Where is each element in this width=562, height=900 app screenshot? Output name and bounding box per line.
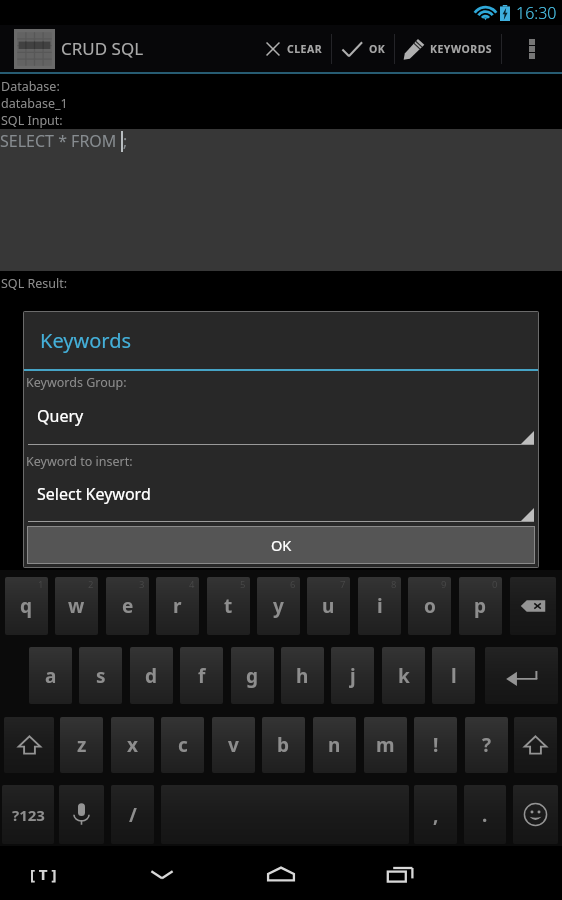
button[interactable]: ?123 — [2, 785, 54, 844]
button[interactable]: f — [180, 647, 223, 704]
staticText: 9 — [441, 578, 447, 591]
staticText: Select Keyword — [37, 483, 151, 505]
button[interactable]: x — [111, 717, 154, 773]
button[interactable]: h — [281, 647, 324, 704]
staticText: OK — [369, 42, 386, 56]
staticText: l — [451, 663, 457, 689]
staticText: a — [45, 663, 57, 689]
staticText: m — [376, 732, 395, 758]
button[interactable]: j — [331, 647, 374, 704]
staticText: p — [474, 593, 487, 619]
staticText: [ T ] — [30, 864, 57, 884]
staticText: Keywords Group: — [26, 374, 127, 391]
button[interactable]: ! — [414, 717, 457, 773]
staticText: Keyword to insert: — [26, 453, 133, 470]
button[interactable]: Backspace — [510, 577, 556, 635]
staticText: . — [482, 802, 488, 828]
staticText: 6 — [290, 578, 296, 591]
button[interactable]: y — [257, 577, 300, 635]
staticText: CLEAR — [287, 42, 323, 56]
button[interactable]: l — [432, 647, 475, 704]
button[interactable]: Recent apps — [371, 847, 431, 900]
staticText: s — [96, 663, 106, 689]
staticText: SELECT * FROM — [0, 130, 121, 152]
staticText: e — [122, 593, 134, 619]
button[interactable]: c — [161, 717, 204, 773]
button[interactable]: Select Keyword — [28, 469, 534, 522]
staticText: 0 — [492, 578, 498, 591]
button[interactable]: More options — [502, 25, 562, 72]
button[interactable]: OK — [332, 25, 394, 72]
staticText: SQL Result: — [1, 275, 68, 292]
button[interactable]: t — [207, 577, 250, 635]
staticText: ; — [123, 130, 128, 152]
staticText: 1 — [38, 578, 44, 591]
staticText: w — [68, 593, 85, 619]
staticText: 2 — [88, 578, 94, 591]
button[interactable]: , — [414, 785, 457, 844]
staticText: SQL Input: — [1, 112, 63, 129]
staticText: x — [127, 732, 138, 758]
button[interactable]: Query — [28, 390, 534, 445]
staticText: ! — [433, 732, 439, 758]
staticText: q — [20, 593, 33, 619]
staticText: y — [273, 593, 284, 619]
button[interactable]: / — [111, 785, 154, 844]
button[interactable]: Shift — [4, 717, 54, 773]
staticText: 7 — [340, 578, 346, 591]
staticText: f — [198, 663, 206, 689]
button[interactable]: OK — [28, 527, 534, 563]
staticText: v — [228, 732, 239, 758]
button[interactable]: m — [364, 717, 407, 773]
staticText: k — [398, 663, 410, 689]
button[interactable]: d — [130, 647, 173, 704]
button[interactable]: r — [156, 577, 199, 635]
staticText: 5 — [240, 578, 246, 591]
staticText: ?123 — [12, 805, 45, 825]
staticText: CRUD SQL — [61, 37, 144, 60]
staticText: / — [129, 802, 137, 828]
button[interactable]: p — [459, 577, 502, 635]
button[interactable]: q — [5, 577, 48, 635]
staticText: OK — [271, 535, 292, 555]
button[interactable]: CLEAR — [256, 25, 331, 72]
button[interactable]: e — [106, 577, 149, 635]
button[interactable]: Emoji — [513, 785, 558, 844]
staticText: j — [350, 663, 356, 689]
staticText: n — [328, 732, 341, 758]
staticText: g — [246, 663, 259, 689]
button[interactable]: w — [55, 577, 98, 635]
staticText: 4 — [189, 578, 195, 591]
staticText: KEYWORDS — [430, 42, 493, 56]
button[interactable]: g — [231, 647, 274, 704]
button[interactable]: a — [29, 647, 72, 704]
button[interactable]: KEYWORDS — [395, 25, 501, 72]
button[interactable]: . — [464, 785, 506, 844]
button[interactable]: k — [382, 647, 425, 704]
button[interactable]: n — [313, 717, 356, 773]
button[interactable]: Home — [251, 847, 311, 900]
button[interactable]: Choose input method — [8, 847, 78, 900]
button[interactable]: z — [60, 717, 103, 773]
button[interactable]: v — [212, 717, 255, 773]
staticText: Database: — [1, 78, 60, 95]
staticText: d — [145, 663, 158, 689]
button[interactable]: Shift — [514, 717, 557, 773]
staticText: 8 — [391, 578, 397, 591]
staticText: 3 — [139, 578, 145, 591]
button[interactable]: u — [307, 577, 350, 635]
button[interactable]: Enter — [485, 647, 558, 704]
staticText: c — [178, 732, 188, 758]
button[interactable]: o — [408, 577, 451, 635]
button[interactable]: i — [358, 577, 401, 635]
button[interactable]: Space — [161, 785, 409, 844]
staticText: ? — [482, 732, 492, 758]
staticText: r — [173, 593, 182, 619]
staticText: o — [424, 593, 436, 619]
button[interactable]: b — [262, 717, 305, 773]
button[interactable]: ? — [465, 717, 508, 773]
button[interactable]: s — [79, 647, 122, 704]
staticText: 16:30 — [516, 2, 557, 24]
button[interactable]: Back — [132, 847, 192, 900]
button[interactable]: Voice input — [59, 785, 104, 844]
